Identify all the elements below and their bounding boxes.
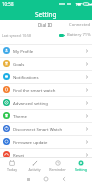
staticText: Dial ID bbox=[38, 22, 53, 28]
staticText: Firmware update bbox=[13, 139, 48, 145]
button[interactable]: Find the smart watch bbox=[0, 83, 92, 96]
staticText: Battery 71% bbox=[67, 32, 91, 38]
button[interactable]: Goals bbox=[0, 57, 92, 70]
button[interactable]: Reset bbox=[0, 148, 92, 161]
button[interactable]: My Profile bbox=[0, 44, 92, 57]
staticText: Find the smart watch bbox=[13, 87, 56, 93]
staticText: Theme bbox=[13, 113, 27, 119]
staticText: Goals bbox=[13, 61, 25, 67]
staticText: Connected bbox=[69, 22, 91, 28]
staticText: 10:58 bbox=[2, 1, 14, 7]
button[interactable]: Today bbox=[0, 158, 23, 174]
button[interactable]: Back bbox=[55, 174, 73, 184]
button[interactable]: Theme bbox=[0, 109, 92, 122]
staticText: My Profile bbox=[13, 48, 34, 54]
staticText: Reset bbox=[13, 152, 25, 158]
button[interactable]: Home bbox=[37, 174, 55, 184]
staticText: Advanced setting bbox=[13, 100, 48, 106]
button[interactable]: Recents bbox=[19, 174, 37, 184]
button[interactable]: Reminder bbox=[46, 158, 69, 174]
staticText: HD bbox=[76, 2, 82, 7]
button[interactable]: Setting bbox=[69, 158, 92, 174]
button[interactable]: Notifications bbox=[0, 70, 92, 83]
staticText: Setting bbox=[35, 10, 57, 19]
button[interactable]: Firmware update bbox=[0, 135, 92, 148]
staticText: Setting bbox=[75, 167, 87, 172]
button[interactable]: Activity bbox=[23, 158, 46, 174]
staticText: Disconnect Smart Watch bbox=[13, 126, 63, 132]
staticText: Today bbox=[7, 167, 17, 172]
button[interactable]: Advanced setting bbox=[0, 96, 92, 109]
button[interactable]: Disconnect Smart Watch bbox=[0, 122, 92, 135]
staticText: Activity bbox=[28, 167, 41, 172]
staticText: Notifications bbox=[13, 74, 39, 80]
staticText: Reminder bbox=[49, 167, 66, 172]
staticText: Last synced: 10:58 bbox=[2, 33, 31, 38]
